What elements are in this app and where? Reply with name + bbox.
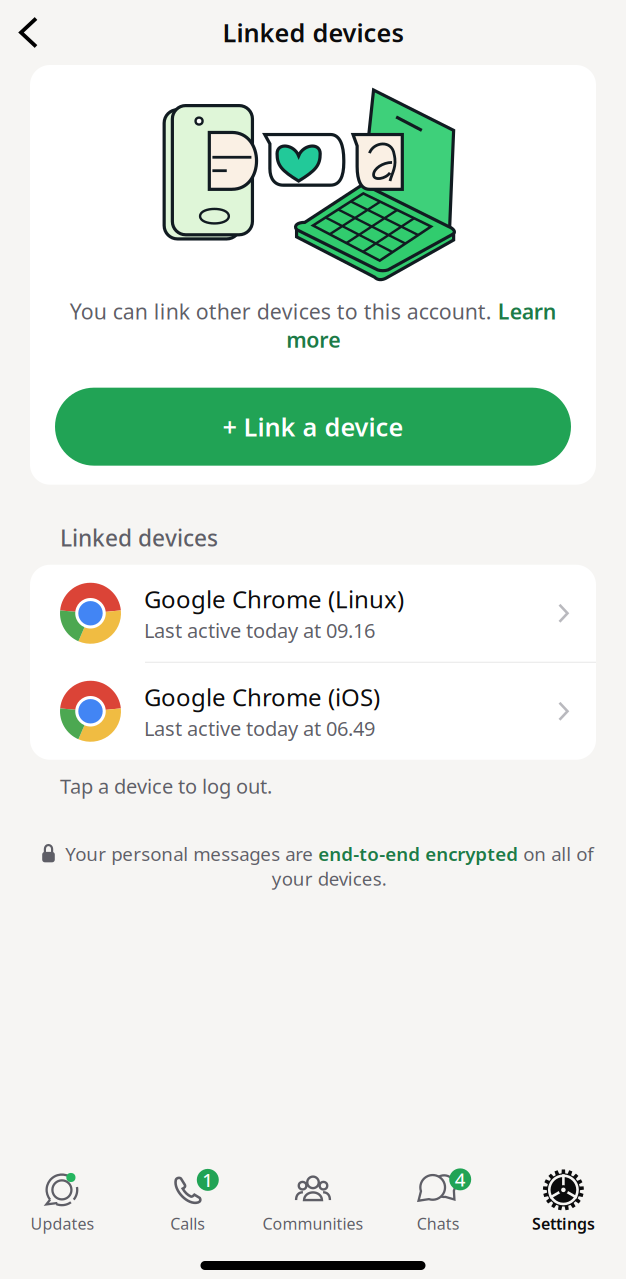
staticText: Linked devices xyxy=(222,16,403,49)
staticText: Settings xyxy=(532,1213,595,1234)
staticText: + Link a device xyxy=(222,410,403,443)
staticText: Communities xyxy=(262,1213,363,1234)
button[interactable]: 1 xyxy=(125,1170,250,1234)
staticText: 1 xyxy=(202,1167,213,1192)
button[interactable]: Back xyxy=(0,0,60,64)
button[interactable]: Updates xyxy=(0,1170,125,1234)
button[interactable]: Communities xyxy=(250,1170,376,1234)
staticText: Your personal messages are end-to-end en… xyxy=(65,841,593,891)
staticText: Google Chrome (Linux) xyxy=(144,583,404,615)
button[interactable]: Google Chrome (Linux) xyxy=(30,565,596,662)
staticText: Google Chrome (iOS) xyxy=(144,681,380,713)
button[interactable]: + Link a device xyxy=(55,388,571,466)
button[interactable]: Google Chrome (iOS) xyxy=(30,663,596,760)
button[interactable]: Settings xyxy=(501,1170,626,1234)
staticText: 4 xyxy=(455,1167,466,1192)
staticText: Last active today at 06.49 xyxy=(144,715,375,741)
staticText: Tap a device to log out. xyxy=(60,773,272,799)
staticText: Chats xyxy=(417,1213,460,1234)
staticText: You can link other devices to this accou… xyxy=(69,297,556,354)
staticText: Last active today at 09.16 xyxy=(144,617,375,643)
button[interactable]: 4 xyxy=(376,1170,501,1234)
staticText: Linked devices xyxy=(60,523,218,553)
staticText: Updates xyxy=(31,1213,95,1234)
staticText: Calls xyxy=(170,1213,205,1234)
